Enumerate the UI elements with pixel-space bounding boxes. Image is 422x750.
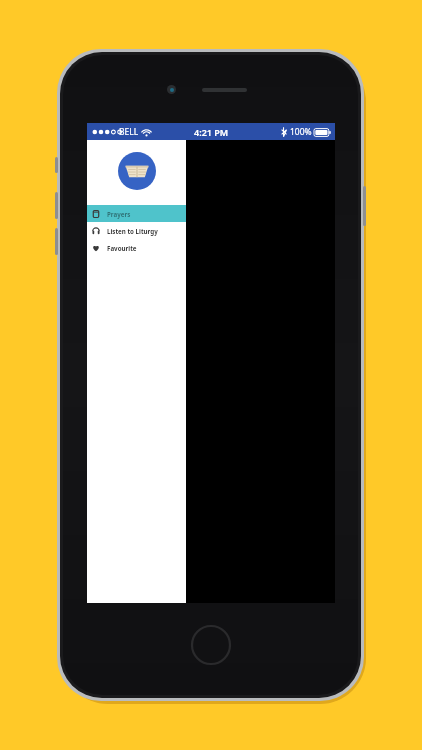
staticText: Favourite <box>107 244 137 252</box>
staticText: 4:21 PM <box>194 126 229 138</box>
button[interactable]: Power <box>363 186 366 226</box>
button[interactable]: Prayers <box>87 205 186 222</box>
button[interactable]: Home <box>191 625 231 665</box>
button[interactable]: Favourite <box>87 239 186 256</box>
button[interactable]: Silent switch <box>55 157 58 173</box>
staticText: 100% <box>290 126 312 138</box>
button[interactable]: Volume down <box>55 228 58 255</box>
staticText: Prayers <box>107 210 131 218</box>
staticText: Listen to Liturgy <box>107 227 158 235</box>
staticText: BELL <box>119 126 139 138</box>
button[interactable]: Volume up <box>55 192 58 219</box>
button[interactable] <box>87 140 186 205</box>
button[interactable]: Listen to Liturgy <box>87 222 186 239</box>
